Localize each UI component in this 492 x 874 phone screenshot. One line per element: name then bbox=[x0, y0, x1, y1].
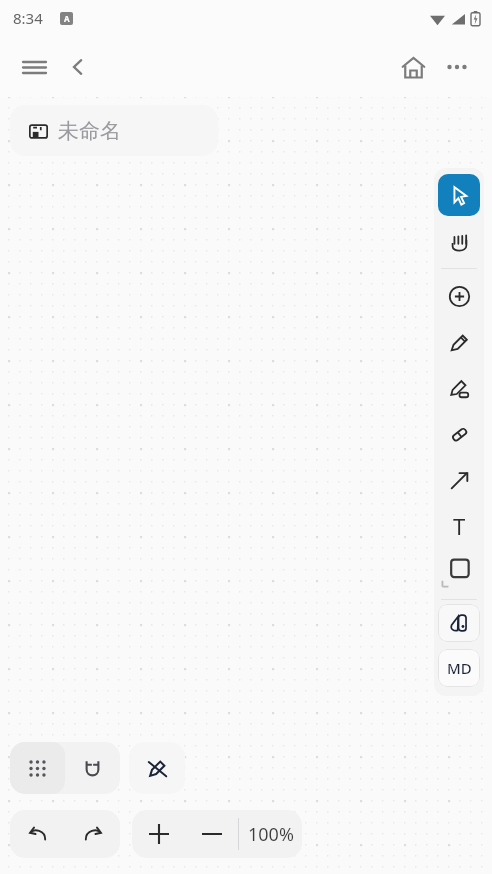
button[interactable]: Menu bbox=[14, 47, 54, 87]
button[interactable]: Eraser bbox=[438, 413, 480, 455]
button[interactable]: Color palette bbox=[438, 604, 480, 642]
button[interactable]: Redo bbox=[65, 810, 120, 858]
button[interactable]: Add bbox=[438, 275, 480, 317]
button[interactable]: Shape bbox=[436, 549, 482, 595]
button[interactable]: Zoom in bbox=[132, 810, 185, 858]
staticText: 100% bbox=[248, 822, 294, 847]
button[interactable]: Select bbox=[438, 174, 480, 216]
staticText: MD bbox=[447, 658, 472, 678]
button[interactable]: Highlighter bbox=[438, 367, 480, 409]
button[interactable]: Zoom out bbox=[185, 810, 238, 858]
button[interactable]: Grid bbox=[10, 742, 65, 794]
staticText: 8:34 bbox=[13, 8, 43, 28]
button[interactable]: Arrow bbox=[438, 459, 480, 501]
staticText: 未命名 bbox=[58, 118, 121, 144]
button[interactable]: Disable pen bbox=[129, 742, 185, 794]
button[interactable]: Pan bbox=[438, 220, 480, 262]
button[interactable]: 未命名 bbox=[10, 105, 218, 156]
button[interactable]: Undo bbox=[10, 810, 65, 858]
button[interactable]: More options bbox=[436, 46, 478, 88]
button[interactable]: Snap to grid bbox=[65, 742, 120, 794]
button[interactable]: Back bbox=[58, 47, 98, 87]
button[interactable]: 100% bbox=[239, 810, 302, 858]
staticText: T bbox=[453, 511, 466, 541]
button[interactable]: Text bbox=[436, 503, 482, 549]
staticText: A bbox=[64, 13, 70, 24]
button[interactable]: Home bbox=[392, 46, 434, 88]
button[interactable]: MD bbox=[438, 649, 480, 687]
button[interactable]: Pen bbox=[438, 321, 480, 363]
